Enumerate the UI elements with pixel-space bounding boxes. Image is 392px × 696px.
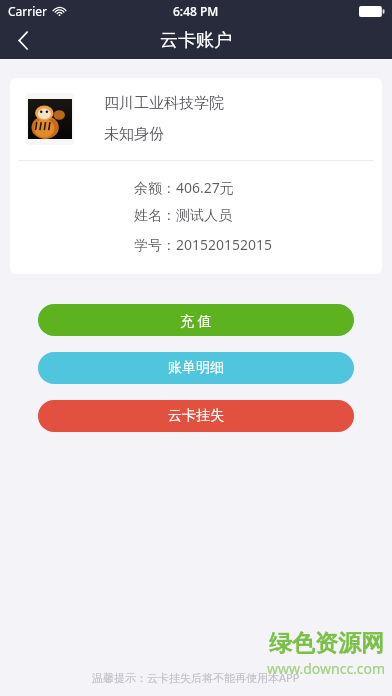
button[interactable]: Back	[0, 22, 46, 59]
staticText: 未知身份	[104, 125, 164, 144]
staticText: Carrier	[8, 3, 48, 19]
staticText: 账单明细	[168, 359, 224, 377]
staticText: 绿色资源网	[269, 629, 384, 658]
staticText: 温馨提示：云卡挂失后将不能再使用本APP	[92, 670, 300, 685]
staticText: 姓名：测试人员	[134, 207, 232, 225]
staticText: 云卡挂失	[168, 407, 224, 425]
staticText: 云卡账户	[160, 29, 232, 52]
staticText: 余额：406.27元	[134, 178, 234, 197]
button[interactable]: 账单明细	[38, 352, 354, 384]
button[interactable]: Avatar	[26, 93, 74, 145]
staticText: 充 值	[180, 311, 212, 330]
staticText: www.downcc.com	[267, 659, 386, 678]
staticText: 6:48 PM	[173, 3, 219, 19]
button[interactable]: 充 值	[38, 304, 354, 336]
staticText: 四川工业科技学院	[104, 94, 224, 113]
staticText: 学号：201520152015	[134, 235, 273, 254]
button[interactable]: 云卡挂失	[38, 400, 354, 432]
